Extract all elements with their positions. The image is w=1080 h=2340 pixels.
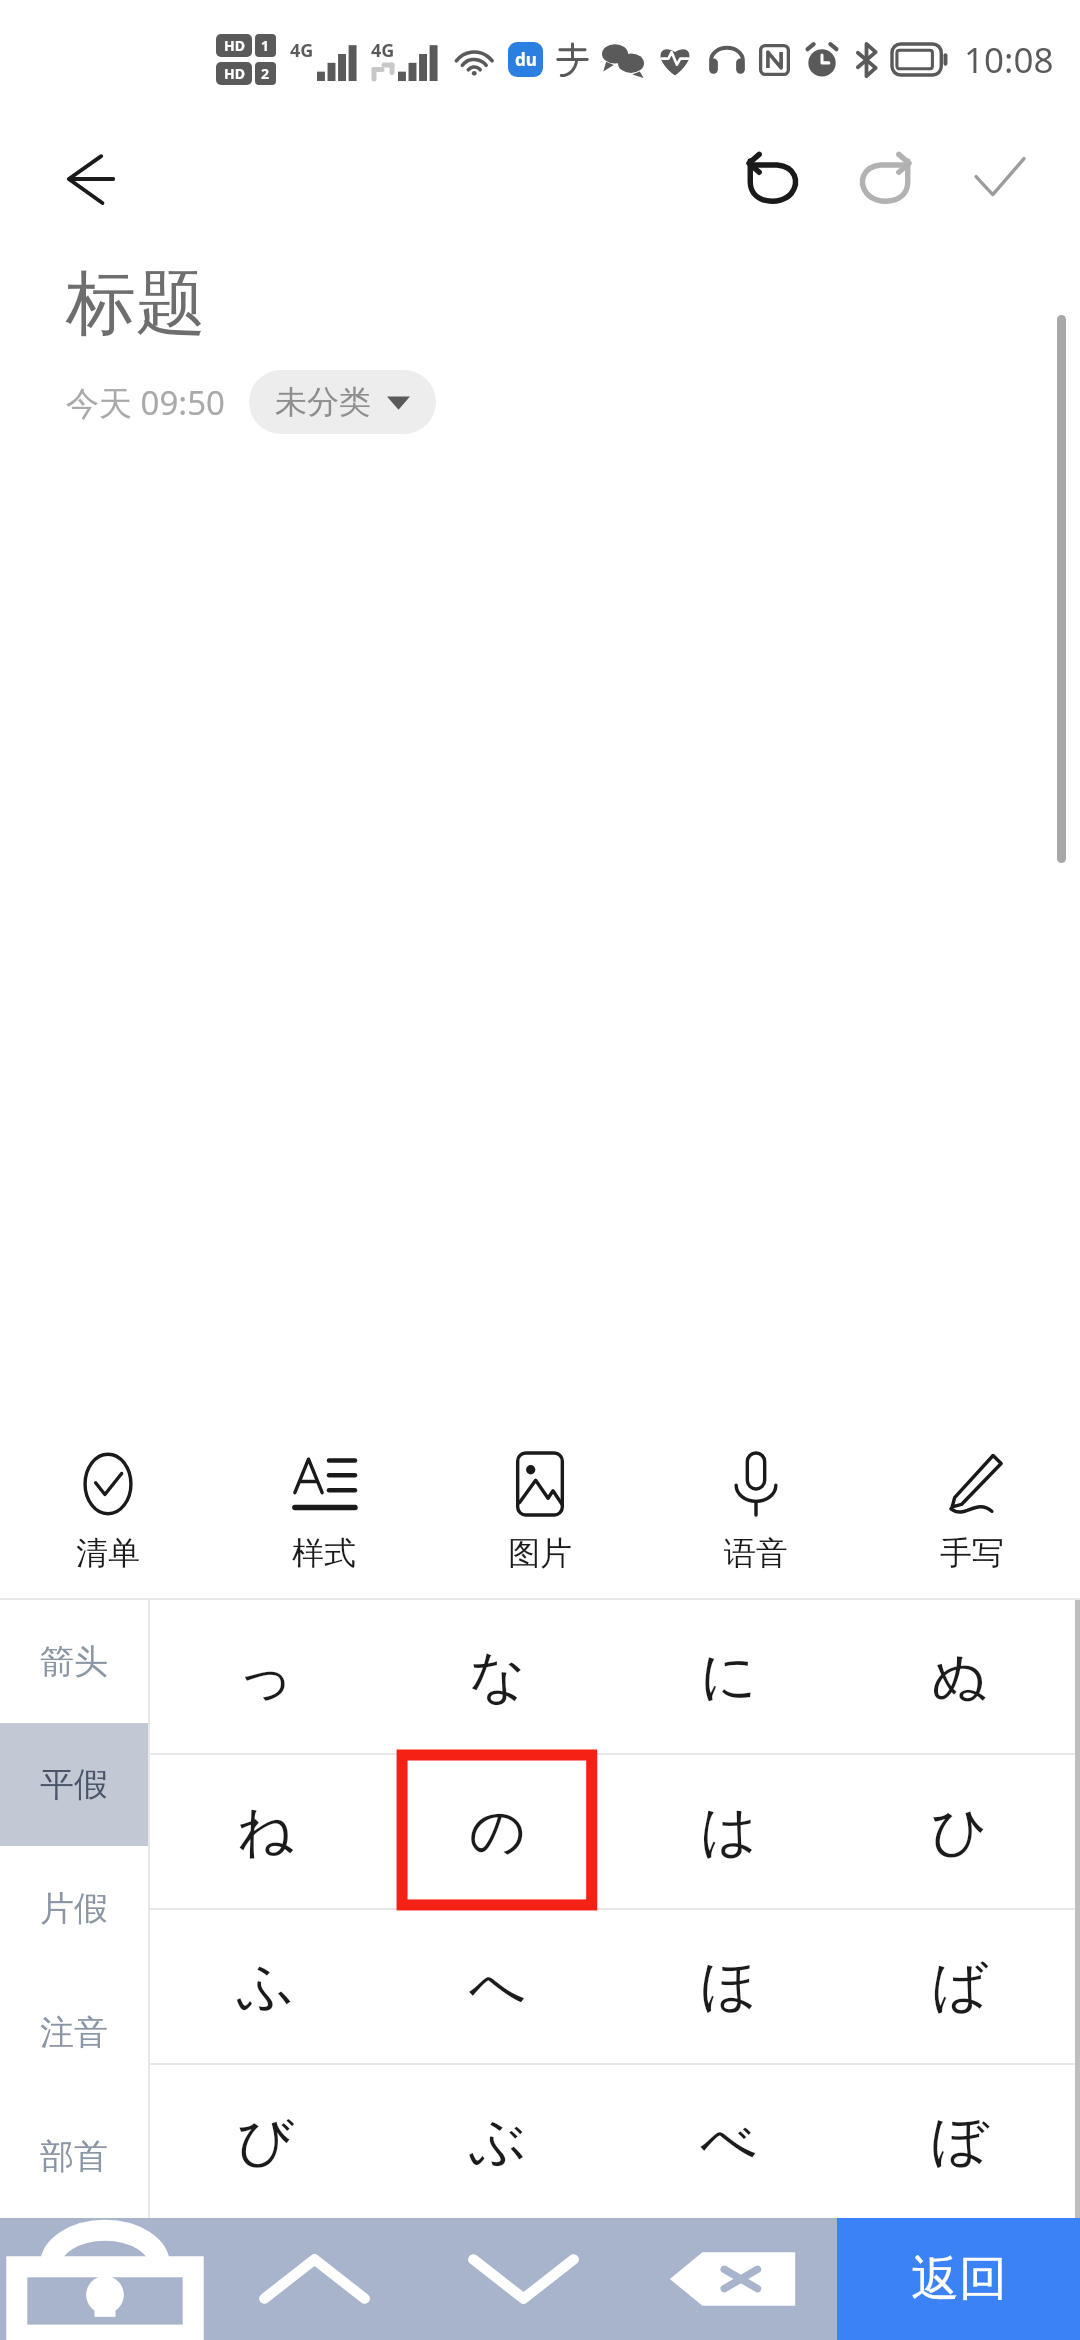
button[interactable]: Next: [419, 2218, 628, 2340]
button[interactable]: び: [150, 2065, 382, 2218]
button[interactable]: ね: [150, 1755, 382, 1908]
button[interactable]: 图片: [432, 1428, 648, 1598]
button[interactable]: 样式: [216, 1428, 432, 1598]
staticText: 清单: [76, 1533, 140, 1573]
button[interactable]: Previous: [210, 2218, 419, 2340]
staticText: 片假: [40, 1887, 108, 1930]
button[interactable]: 片假: [0, 1846, 148, 1970]
button[interactable]: ほ: [613, 1910, 844, 2063]
button[interactable]: 注音: [0, 1970, 148, 2094]
staticText: 平假: [40, 1763, 108, 1806]
staticText: HD: [224, 36, 245, 55]
button[interactable]: Delete: [628, 2218, 837, 2340]
button[interactable]: 语音: [648, 1428, 864, 1598]
staticText: 2: [261, 64, 270, 83]
staticText: は: [700, 1796, 758, 1867]
button[interactable]: 返回: [837, 2218, 1080, 2340]
staticText: 今天 09:50: [66, 380, 225, 425]
button[interactable]: ひ: [844, 1755, 1075, 1908]
staticText: 图片: [508, 1533, 572, 1573]
button[interactable]: 平假: [0, 1723, 148, 1846]
staticText: 1: [261, 36, 270, 55]
button[interactable]: ば: [844, 1910, 1075, 2063]
button[interactable]: 部首: [0, 2094, 148, 2218]
staticText: 注音: [40, 2011, 108, 2054]
staticText: ふ: [237, 1951, 295, 2022]
staticText: の: [469, 1796, 527, 1867]
button[interactable]: な: [382, 1600, 613, 1753]
staticText: べ: [700, 2106, 758, 2177]
staticText: 语音: [724, 1533, 788, 1573]
button[interactable]: 手写: [864, 1428, 1080, 1598]
staticText: び: [237, 2106, 295, 2177]
staticText: ね: [237, 1796, 295, 1867]
button[interactable]: ふ: [150, 1910, 382, 2063]
staticText: 返回: [911, 2249, 1007, 2309]
button[interactable]: Back: [40, 131, 136, 227]
staticText: HD: [224, 64, 245, 83]
staticText: 标题: [66, 260, 206, 348]
button[interactable]: Lock: [0, 2218, 210, 2340]
staticText: 手写: [940, 1533, 1004, 1573]
staticText: 样式: [292, 1533, 356, 1573]
button[interactable]: べ: [613, 2065, 844, 2218]
button[interactable]: Undo: [722, 129, 822, 229]
staticText: 未分类: [275, 382, 371, 422]
staticText: な: [469, 1641, 527, 1712]
button[interactable]: Done: [950, 129, 1050, 229]
staticText: ぬ: [931, 1641, 989, 1712]
button[interactable]: 清单: [0, 1428, 216, 1598]
staticText: 4G: [290, 38, 314, 63]
staticText: du: [515, 48, 537, 71]
staticText: ば: [931, 1951, 989, 2022]
button[interactable]: は: [613, 1755, 844, 1908]
button[interactable]: ぼ: [844, 2065, 1075, 2218]
staticText: 4G: [371, 38, 395, 63]
button[interactable]: ぬ: [844, 1600, 1075, 1753]
staticText: へ: [469, 1951, 527, 2022]
staticText: ぼ: [931, 2106, 989, 2177]
button[interactable]: ぶ: [382, 2065, 613, 2218]
staticText: ぶ: [469, 2106, 527, 2177]
staticText: っ: [237, 1641, 295, 1712]
button[interactable]: 箭头: [0, 1600, 148, 1723]
staticText: に: [700, 1641, 758, 1712]
button[interactable]: の: [382, 1755, 613, 1908]
button[interactable]: に: [613, 1600, 844, 1753]
staticText: 部首: [40, 2135, 108, 2178]
button[interactable]: 未分类: [249, 370, 436, 434]
button[interactable]: Redo: [836, 129, 936, 229]
staticText: 10:08: [964, 36, 1054, 84]
staticText: ほ: [700, 1951, 758, 2022]
staticText: 箭头: [40, 1640, 108, 1683]
staticText: ひ: [931, 1796, 989, 1867]
button[interactable]: へ: [382, 1910, 613, 2063]
button[interactable]: っ: [150, 1600, 382, 1753]
